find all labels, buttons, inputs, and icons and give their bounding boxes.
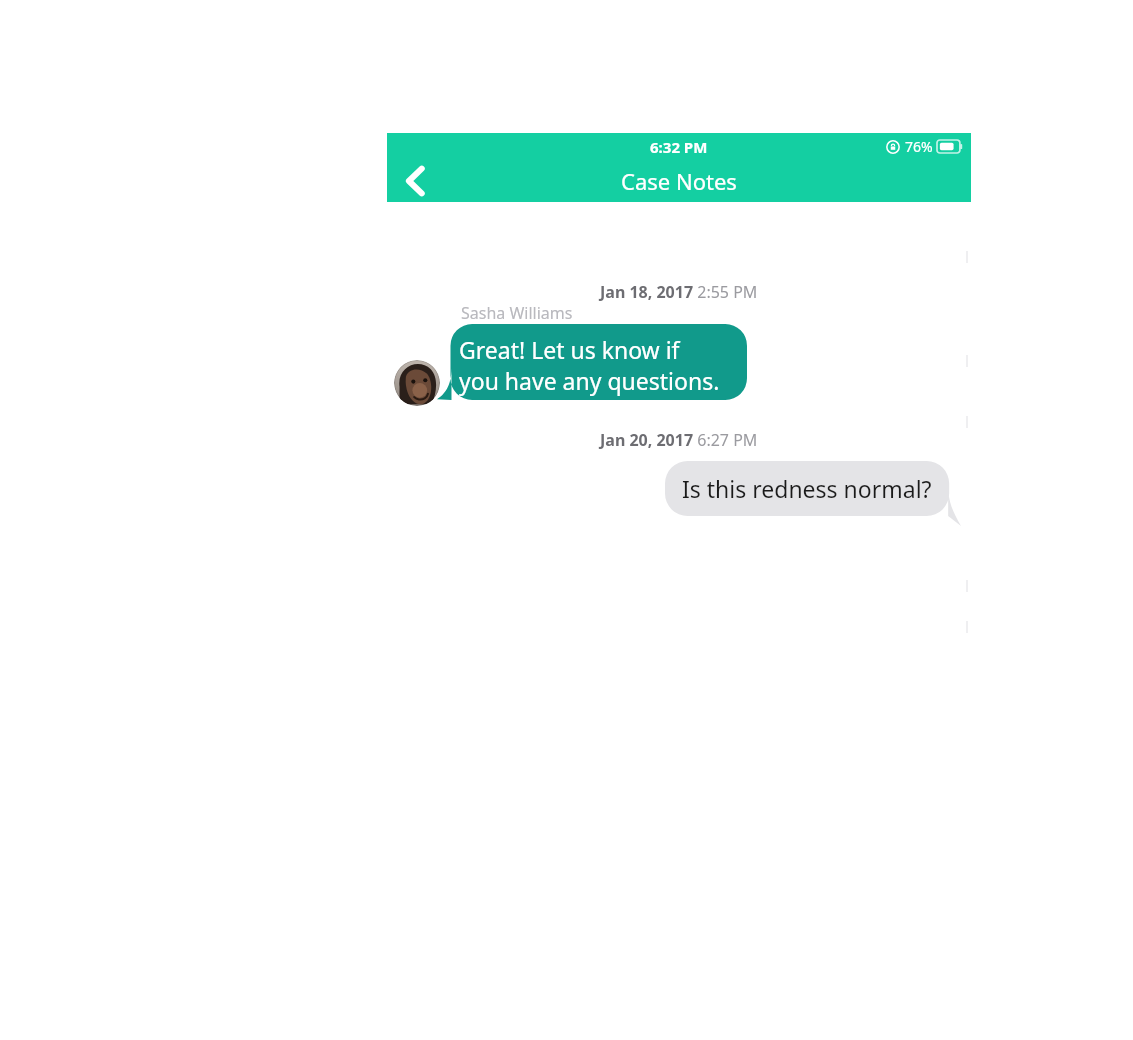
staticText: 6:32 PM xyxy=(650,137,708,157)
staticText: you have any questions. xyxy=(459,365,720,396)
staticText: Sasha Williams xyxy=(461,302,573,324)
staticText: Case Notes xyxy=(621,166,737,196)
button[interactable]: Great! Let us know if xyxy=(437,324,747,400)
button[interactable]: Back xyxy=(387,160,443,202)
staticText: Jan 18, 2017 2:55 PM xyxy=(600,281,758,303)
button[interactable]: Is this redness normal? xyxy=(665,461,961,516)
staticText: 76% xyxy=(905,137,933,156)
staticText: Great! Let us know if xyxy=(459,334,680,365)
staticText: Is this redness normal? xyxy=(682,473,932,504)
staticText: Jan 20, 2017 6:27 PM xyxy=(600,429,758,451)
